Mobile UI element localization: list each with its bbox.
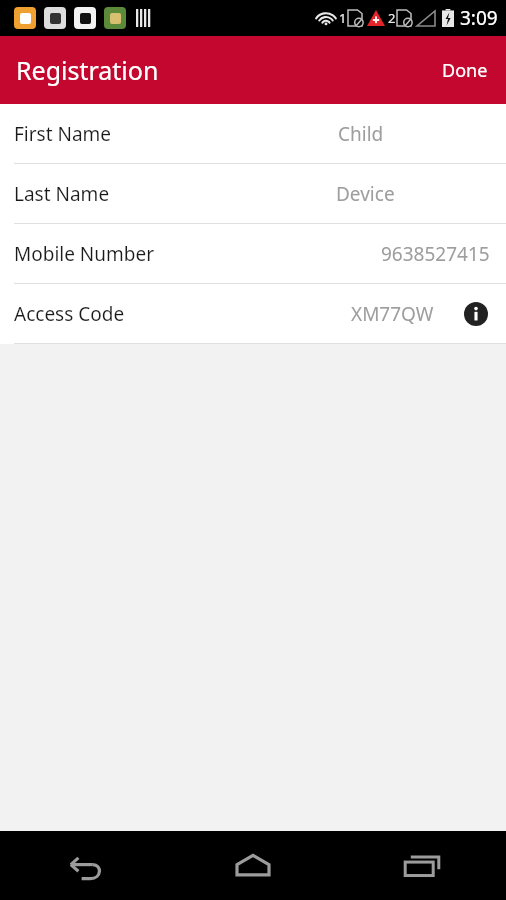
staticText: Mobile Number	[14, 241, 155, 267]
staticText: Access Code	[14, 301, 125, 327]
staticText: 2	[388, 9, 396, 27]
button[interactable]: Access Code	[0, 284, 506, 343]
staticText: Registration	[16, 53, 159, 87]
staticText: First Name	[14, 121, 112, 147]
button[interactable]: Done	[424, 44, 506, 97]
button[interactable]: Home	[168, 831, 337, 900]
button[interactable]: Last Name	[0, 164, 506, 223]
button[interactable]: Mobile Number	[0, 224, 506, 283]
staticText: 9638527415	[381, 241, 490, 267]
staticText: XM77QW	[351, 301, 434, 327]
staticText: Last Name	[14, 181, 110, 207]
button[interactable]: Access code information	[460, 298, 492, 330]
staticText: 3:09	[460, 5, 498, 31]
button[interactable]: First Name	[0, 104, 506, 163]
staticText: 1	[339, 9, 347, 27]
button[interactable]: Recent apps	[337, 831, 506, 900]
staticText: Done	[442, 58, 488, 83]
staticText: Child	[338, 121, 384, 147]
button[interactable]: Back	[0, 831, 168, 900]
staticText: Device	[336, 181, 395, 207]
